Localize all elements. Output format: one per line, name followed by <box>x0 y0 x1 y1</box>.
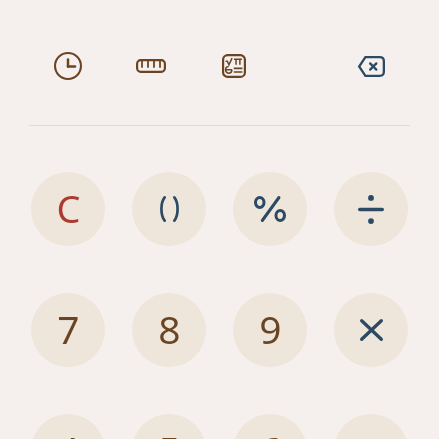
button[interactable] <box>334 293 408 367</box>
staticText: 6 <box>259 423 282 439</box>
button[interactable]: History <box>46 44 90 88</box>
button[interactable]: 7 <box>31 293 105 367</box>
staticText: 5 <box>158 423 181 439</box>
button[interactable]: C <box>31 172 105 246</box>
button[interactable] <box>334 172 408 246</box>
button[interactable]: Backspace <box>349 44 393 88</box>
button[interactable] <box>334 414 408 439</box>
button[interactable] <box>132 172 206 246</box>
staticText: 9 <box>259 302 282 355</box>
button[interactable]: 4 <box>31 414 105 439</box>
staticText: C <box>56 182 81 234</box>
button[interactable]: 9 <box>233 293 307 367</box>
staticText: 7 <box>57 302 80 355</box>
button[interactable]: 8 <box>132 293 206 367</box>
button[interactable]: Scientific functions <box>212 44 256 88</box>
button[interactable]: Unit converter <box>129 44 173 88</box>
button[interactable]: 6 <box>233 414 307 439</box>
staticText: 8 <box>158 302 181 355</box>
button[interactable]: 5 <box>132 414 206 439</box>
staticText: 4 <box>57 423 80 439</box>
button[interactable] <box>233 172 307 246</box>
